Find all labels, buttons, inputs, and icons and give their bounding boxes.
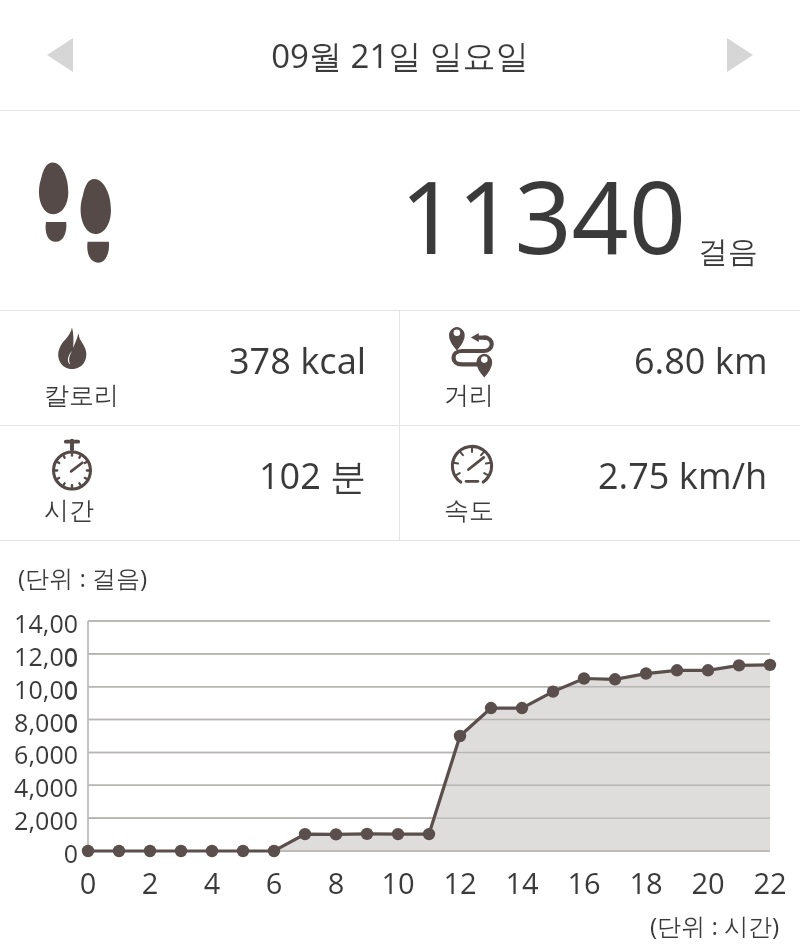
staticText: 6,000 <box>0 737 78 771</box>
staticText: 2 <box>130 863 170 902</box>
staticText: 10 <box>378 863 418 902</box>
staticText: 11340 <box>400 147 686 283</box>
staticText: 8,000 <box>0 705 78 739</box>
staticText: 0 <box>68 863 108 902</box>
button[interactable]: 시간 <box>0 426 399 540</box>
staticText: (단위 : 시간) <box>650 909 780 942</box>
staticText: 14 <box>502 863 542 902</box>
staticText: 20 <box>688 863 728 902</box>
staticText: 6 <box>254 863 294 902</box>
staticText: (단위 : 걸음) <box>18 561 148 594</box>
staticText: 2.75 km/h <box>598 451 768 500</box>
staticText: 378 kcal <box>229 336 367 385</box>
button[interactable]: Next day <box>702 20 778 90</box>
button[interactable]: 11340 <box>0 111 800 310</box>
staticText: 10,000 <box>0 672 78 740</box>
staticText: 12 <box>440 863 480 902</box>
button[interactable]: Previous day <box>22 20 98 90</box>
button[interactable]: 거리 <box>400 311 800 425</box>
staticText: 8 <box>316 863 356 902</box>
staticText: 4,000 <box>0 770 78 804</box>
staticText: 14,000 <box>0 606 78 674</box>
staticText: 0 <box>0 836 78 870</box>
staticText: 속도 <box>444 495 494 526</box>
staticText: 102 분 <box>259 451 367 500</box>
staticText: 09월 21일 일요일 <box>271 33 529 78</box>
staticText: 22 <box>750 863 790 902</box>
staticText: 6.80 km <box>634 336 768 385</box>
button[interactable]: 칼로리 <box>0 311 399 425</box>
staticText: 걸음 <box>698 233 758 271</box>
staticText: 4 <box>192 863 232 902</box>
staticText: 2,000 <box>0 803 78 837</box>
staticText: 16 <box>564 863 604 902</box>
staticText: 12,000 <box>0 639 78 707</box>
button[interactable]: 속도 <box>400 426 800 540</box>
staticText: 시간 <box>44 495 94 526</box>
staticText: 18 <box>626 863 666 902</box>
staticText: 칼로리 <box>44 380 119 411</box>
staticText: 거리 <box>444 380 494 411</box>
